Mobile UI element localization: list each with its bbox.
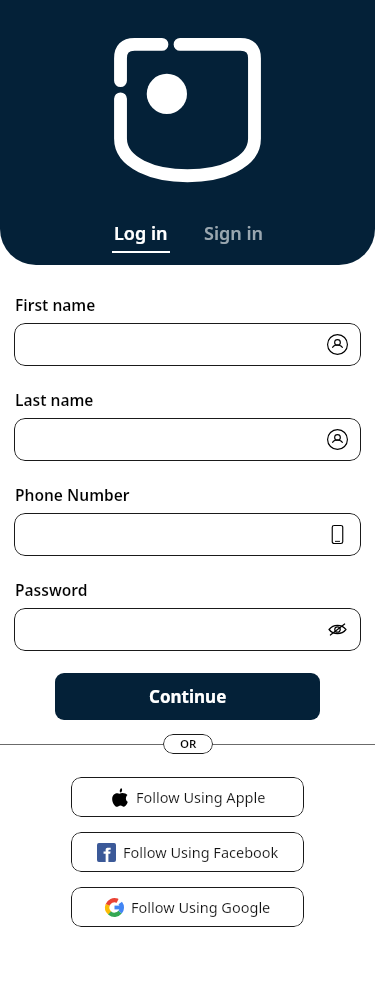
staticText: Continue — [149, 685, 227, 708]
staticText: Password — [15, 579, 88, 600]
other: Show password — [327, 619, 348, 640]
staticText: Follow Using Facebook — [123, 842, 279, 862]
staticText: Phone Number — [15, 484, 130, 505]
button[interactable]: Follow Using Google — [71, 887, 304, 927]
other: Person — [327, 429, 348, 450]
staticText: Last name — [15, 389, 94, 410]
staticText: Sign in — [204, 221, 264, 246]
button[interactable]: Person — [14, 323, 361, 366]
button[interactable]: Sign in — [204, 221, 264, 246]
staticText: Follow Using Google — [131, 897, 271, 917]
other: Person — [327, 334, 348, 355]
button[interactable]: Continue — [55, 673, 320, 720]
button[interactable]: Follow Using Facebook — [71, 832, 304, 872]
button[interactable]: Phone — [14, 513, 361, 556]
staticText: OR — [180, 736, 197, 752]
staticText: Follow Using Apple — [136, 787, 266, 807]
other: Phone — [327, 524, 348, 545]
button[interactable]: Follow Using Apple — [71, 777, 304, 817]
staticText: First name — [15, 294, 96, 315]
button[interactable]: Person — [14, 418, 361, 461]
button[interactable]: Log in — [112, 221, 170, 253]
staticText: Log in — [114, 221, 168, 246]
button[interactable]: Show password — [14, 608, 361, 651]
